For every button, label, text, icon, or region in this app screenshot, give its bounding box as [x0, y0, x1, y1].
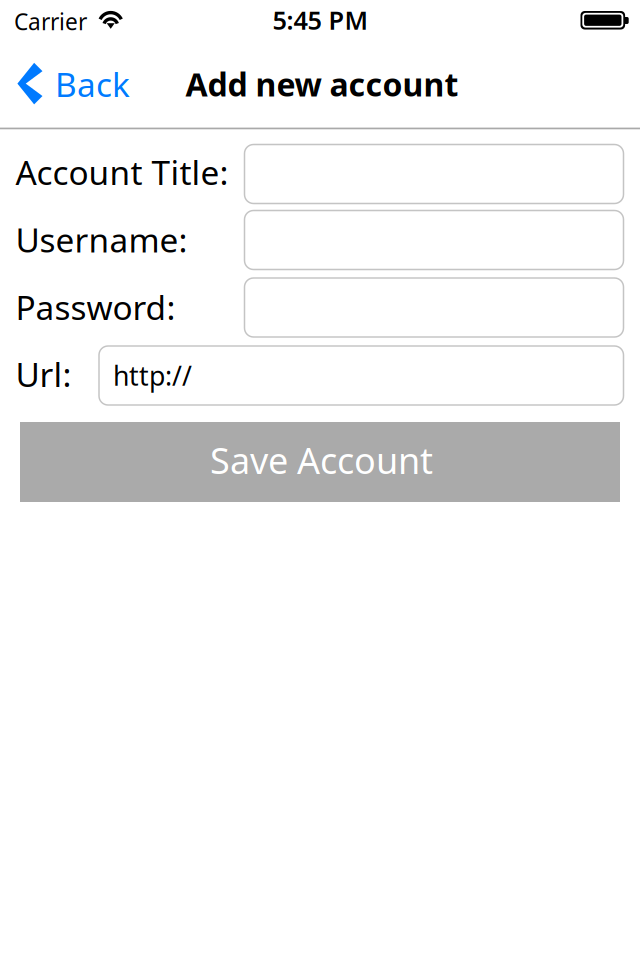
staticText: http://: [113, 358, 192, 393]
staticText: Save Account: [210, 436, 433, 484]
staticText: Add new account: [185, 63, 458, 105]
button[interactable]: Account Title: [244, 144, 623, 203]
staticText: Password:: [15, 285, 175, 329]
staticText: Account Title:: [15, 150, 228, 194]
staticText: Carrier: [14, 6, 87, 36]
staticText: Username:: [15, 217, 187, 262]
staticText: Back: [55, 62, 130, 106]
staticText: Url:: [15, 352, 71, 396]
button[interactable]: Username: [244, 210, 623, 269]
button[interactable]: Password: [244, 278, 623, 337]
button[interactable]: Back: [0, 54, 145, 114]
button[interactable]: Url: [99, 346, 623, 405]
button[interactable]: Save Account: [20, 422, 620, 502]
staticText: 5:45 PM: [272, 3, 368, 37]
